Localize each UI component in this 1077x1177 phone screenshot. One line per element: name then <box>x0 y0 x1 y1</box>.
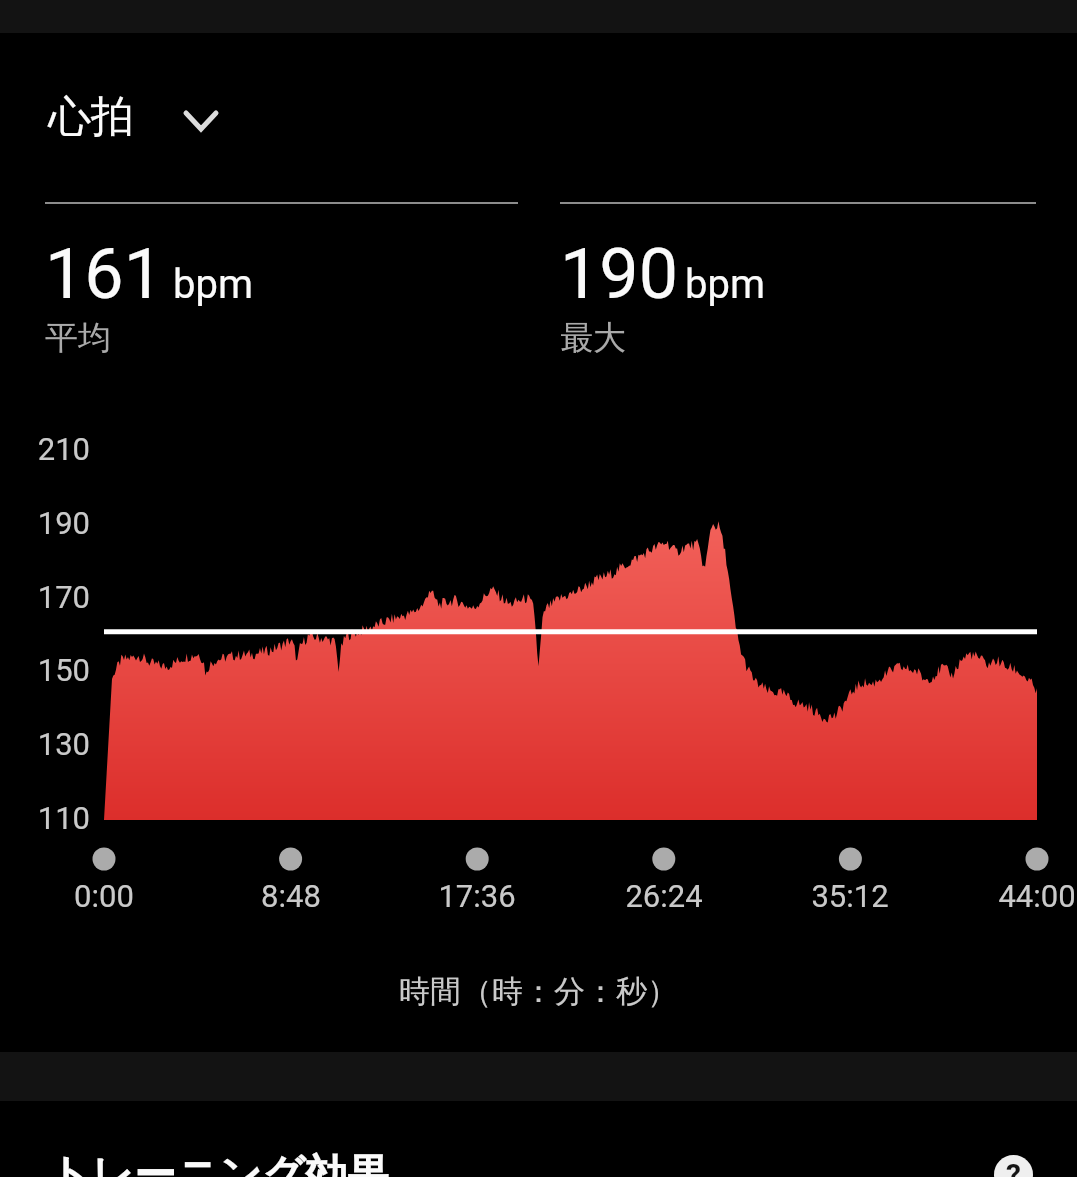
button[interactable] <box>0 1101 1077 1177</box>
staticText: 8:48 <box>211 878 371 914</box>
staticText: 110 <box>10 800 90 836</box>
staticText: 44:00 <box>957 878 1077 914</box>
staticText: bpm <box>173 261 253 308</box>
staticText: 17:36 <box>397 878 557 914</box>
staticText: 最大 <box>560 317 626 359</box>
staticText: 26:24 <box>584 878 744 914</box>
staticText: 190 <box>10 505 90 541</box>
staticText: 平均 <box>45 317 111 359</box>
staticText: 130 <box>10 726 90 762</box>
staticText: 時間（時：分：秒） <box>0 972 1077 1011</box>
staticText: bpm <box>685 261 765 308</box>
staticText: 190 <box>560 233 679 315</box>
staticText: 0:00 <box>24 878 184 914</box>
button[interactable]: 心拍 <box>38 78 230 144</box>
staticText: ? <box>1006 1157 1021 1177</box>
staticText: 150 <box>10 652 90 688</box>
staticText: 35:12 <box>770 878 930 914</box>
staticText: 170 <box>10 579 90 615</box>
staticText: 心拍 <box>48 90 134 144</box>
button[interactable]: ? <box>994 1155 1033 1177</box>
staticText: 161 <box>45 233 164 315</box>
staticText: 210 <box>10 431 90 467</box>
staticText: トレーニング効果 <box>48 1149 389 1177</box>
